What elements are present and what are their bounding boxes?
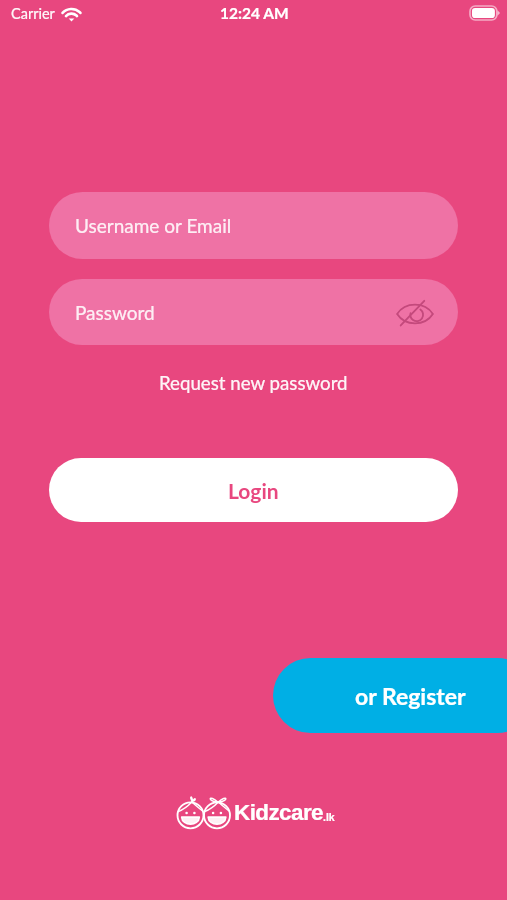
button[interactable]: Password (49, 279, 458, 345)
staticText: Username or Email (75, 214, 232, 237)
button[interactable]: Show password (393, 292, 437, 336)
staticText: Password (75, 301, 155, 324)
staticText: Login (228, 478, 279, 503)
staticText: 12:24 AM (220, 4, 289, 23)
staticText: Request new password (159, 372, 348, 394)
button[interactable]: Request new password (147, 367, 360, 399)
button[interactable]: or Register (273, 658, 507, 733)
staticText: Carrier (11, 5, 55, 22)
staticText: .lk (323, 811, 335, 823)
staticText: or Register (355, 682, 466, 710)
button[interactable]: Login (49, 458, 458, 522)
button[interactable]: Username or Email (49, 192, 458, 259)
staticText: Kidzcare (234, 800, 323, 825)
